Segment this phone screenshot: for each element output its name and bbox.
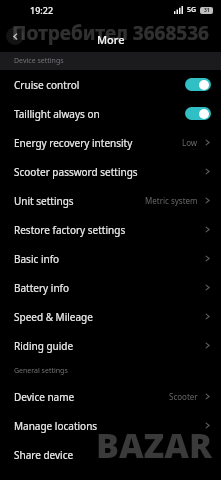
staticText: Manage locations <box>14 419 98 433</box>
staticText: Scooter password settings <box>14 165 138 179</box>
staticText: General settings <box>14 366 68 376</box>
button[interactable]: Unit settings <box>0 186 221 215</box>
staticText: Restore factory settings <box>14 223 126 237</box>
button[interactable]: Cruise control <box>185 78 211 91</box>
staticText: Battery info <box>14 281 70 295</box>
button[interactable]: Riding guide <box>0 331 221 360</box>
staticText: 19:22 <box>30 4 54 16</box>
button[interactable]: Energy recovery intensity <box>0 128 221 157</box>
button[interactable]: Cruise control <box>0 70 221 99</box>
button[interactable]: Taillight always on <box>0 99 221 128</box>
staticText: Cruise control <box>14 78 80 92</box>
staticText: BAZAR <box>96 422 213 468</box>
button[interactable]: Taillight always on <box>185 107 211 120</box>
staticText: Taillight always on <box>14 107 100 121</box>
staticText: Share device <box>14 448 74 462</box>
staticText: Unit settings <box>14 194 74 208</box>
staticText: Basic info <box>14 252 60 266</box>
staticText: Low <box>182 137 198 148</box>
button[interactable]: Battery info <box>0 273 221 302</box>
button[interactable]: Manage locations <box>0 411 221 440</box>
staticText: Speed & Mileage <box>14 310 93 324</box>
button[interactable]: Restore factory settings <box>0 215 221 244</box>
button[interactable]: Speed & Mileage <box>0 302 221 331</box>
button[interactable]: Scooter password settings <box>0 157 221 186</box>
button[interactable]: Basic info <box>0 244 221 273</box>
staticText: Metric system <box>145 195 198 206</box>
staticText: 31 <box>204 7 210 14</box>
staticText: Потребител 3668536 <box>12 20 209 46</box>
staticText: Energy recovery intensity <box>14 136 133 150</box>
staticText: Device name <box>14 390 75 404</box>
staticText: More <box>97 32 125 47</box>
staticText: Scooter <box>169 391 198 402</box>
staticText: Device settings <box>14 56 64 66</box>
button[interactable]: Back <box>6 27 24 45</box>
button[interactable]: Share device <box>0 440 221 469</box>
button[interactable]: Device name <box>0 382 221 411</box>
staticText: Riding guide <box>14 339 74 353</box>
staticText: 5G <box>187 5 197 15</box>
